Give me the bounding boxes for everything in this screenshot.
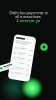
staticText: all transactions — [15, 14, 41, 19]
staticText: Obtén fast payments at — [8, 10, 47, 15]
button[interactable]: Conectar ya — [16, 18, 39, 23]
staticText: Conectar ya — [16, 18, 39, 23]
